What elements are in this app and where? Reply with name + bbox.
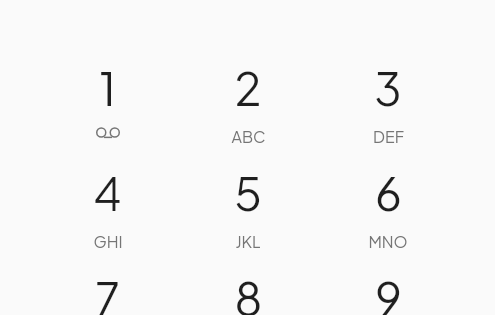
button[interactable]: 2 ABC (178, 46, 318, 151)
staticText: 6 (375, 164, 402, 221)
button[interactable]: 1 voicemail (37, 46, 178, 151)
staticText: 3 (374, 59, 402, 116)
staticText: 9 (375, 269, 402, 315)
staticText: JKL (235, 231, 261, 251)
button[interactable]: 4 GHI (37, 151, 178, 256)
staticText: ABC (231, 126, 266, 146)
button[interactable]: 3 DEF (318, 46, 458, 151)
staticText: 5 (234, 164, 262, 221)
staticText: 8 (234, 269, 263, 315)
staticText: MNO (368, 231, 408, 251)
staticText: 4 (93, 164, 122, 221)
button[interactable]: 5 JKL (178, 151, 318, 256)
button[interactable]: 8 TUV (178, 256, 318, 315)
button[interactable]: 9 WXYZ (318, 256, 458, 315)
staticText: GHI (93, 231, 123, 251)
staticText: 2 (234, 59, 262, 116)
staticText: 7 (95, 269, 120, 315)
staticText: 1 (99, 59, 116, 116)
button[interactable]: 6 MNO (318, 151, 458, 256)
button[interactable]: 7 PQRS (37, 256, 178, 315)
staticText: DEF (373, 126, 404, 146)
